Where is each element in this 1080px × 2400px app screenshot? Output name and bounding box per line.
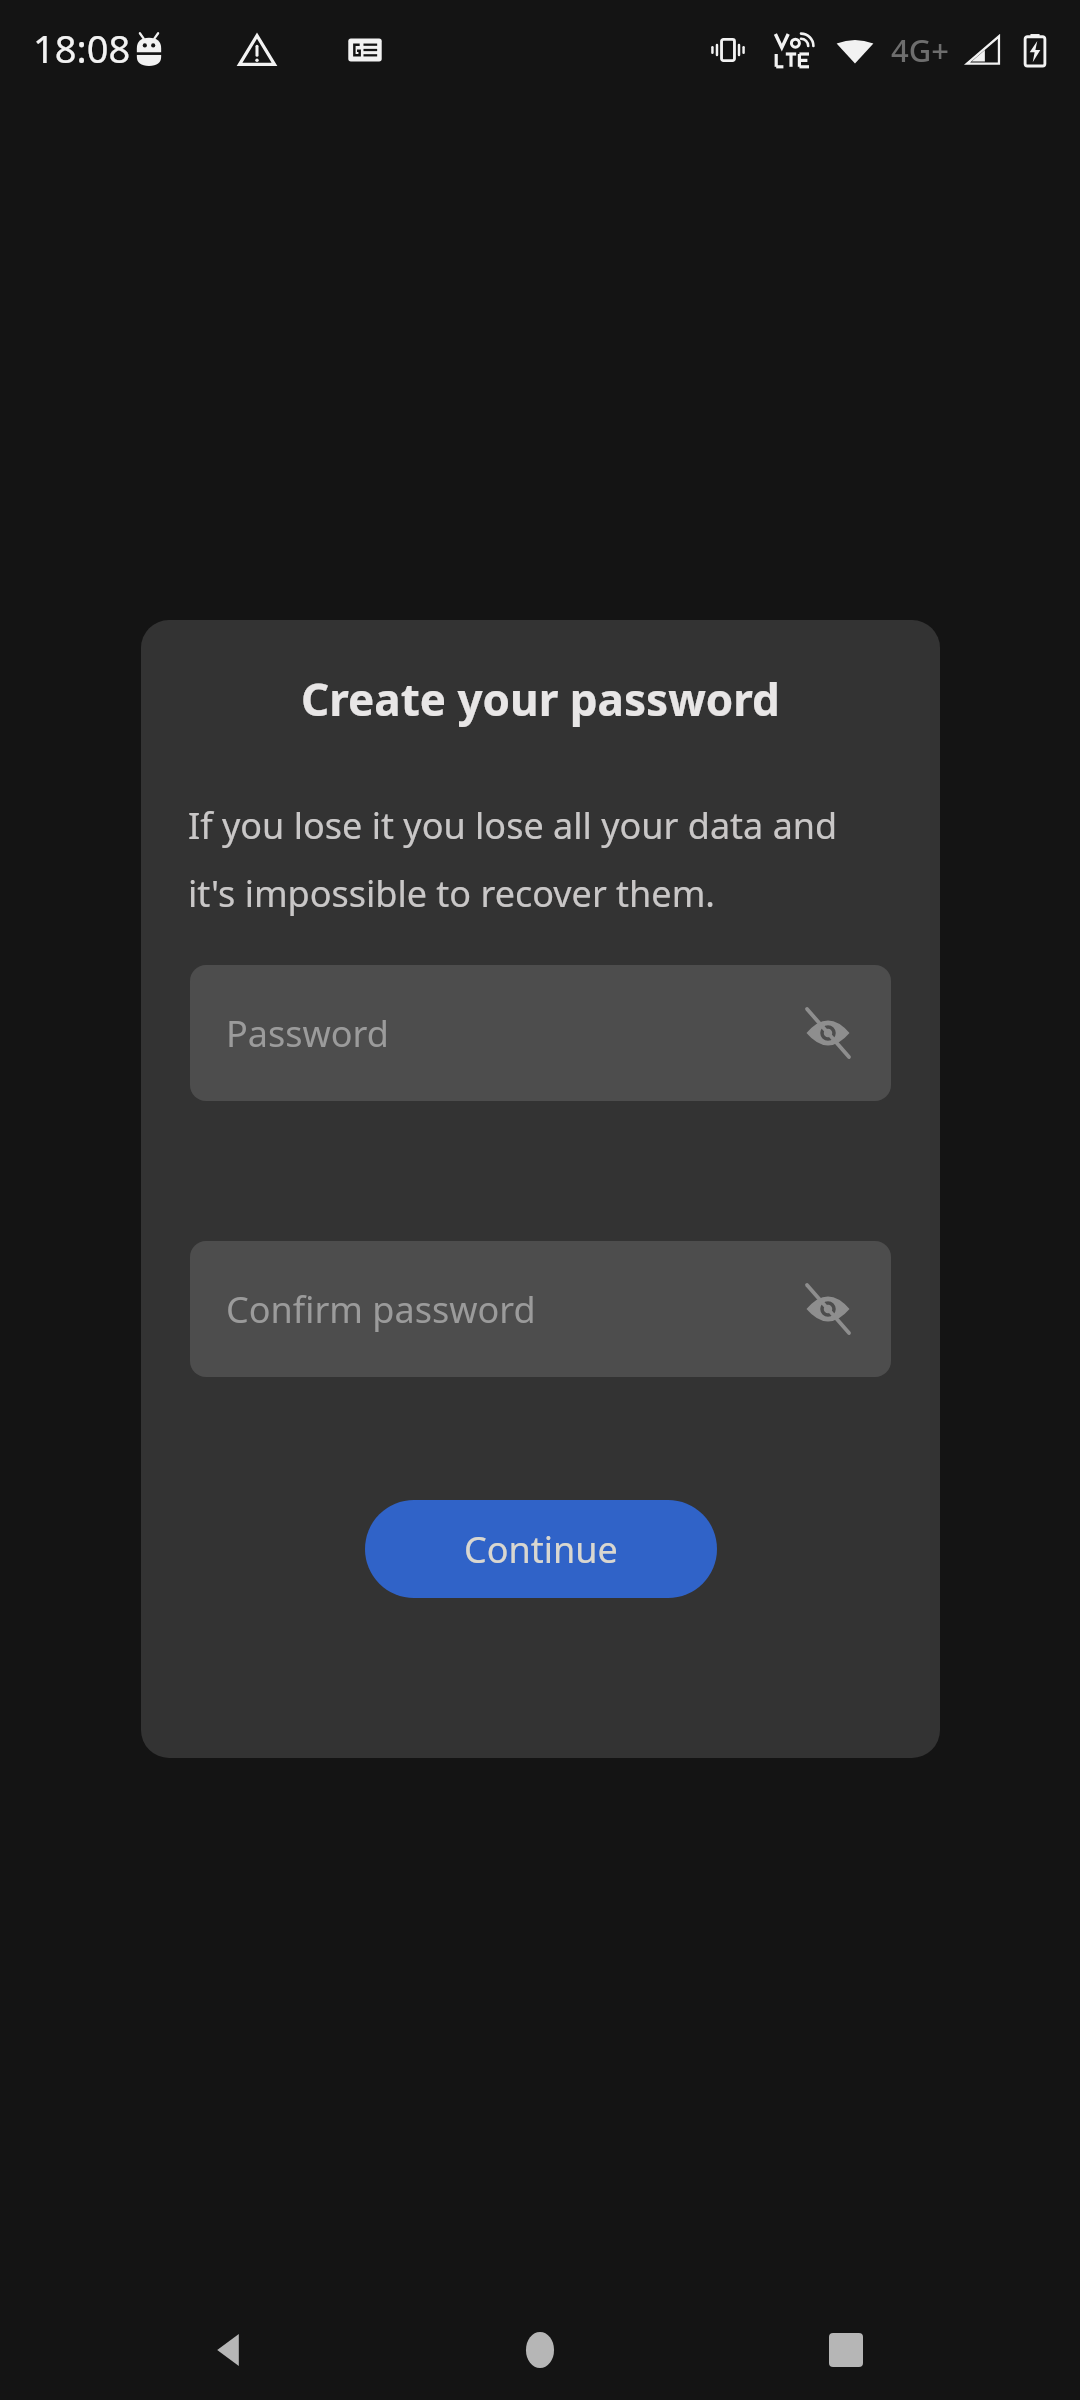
staticText: 18:08	[33, 22, 131, 74]
button[interactable]: Back	[186, 2306, 274, 2394]
staticText: If you lose it you lose all your data an…	[188, 801, 838, 850]
button[interactable]: Confirm password	[190, 1241, 891, 1377]
staticText: it's impossible to recover them.	[188, 869, 715, 918]
button[interactable]: Show password	[801, 1282, 855, 1336]
button[interactable]: Home	[496, 2306, 584, 2394]
staticText: Confirm password	[226, 1285, 536, 1334]
staticText: Create your password	[301, 669, 780, 729]
button[interactable]: Continue	[365, 1500, 717, 1598]
staticText: Continue	[464, 1525, 618, 1574]
button[interactable]: Recent apps	[802, 2306, 890, 2394]
staticText: Password	[226, 1009, 389, 1058]
button[interactable]: Show password	[801, 1006, 855, 1060]
staticText: 4G+	[891, 29, 950, 71]
button[interactable]: Password	[190, 965, 891, 1101]
